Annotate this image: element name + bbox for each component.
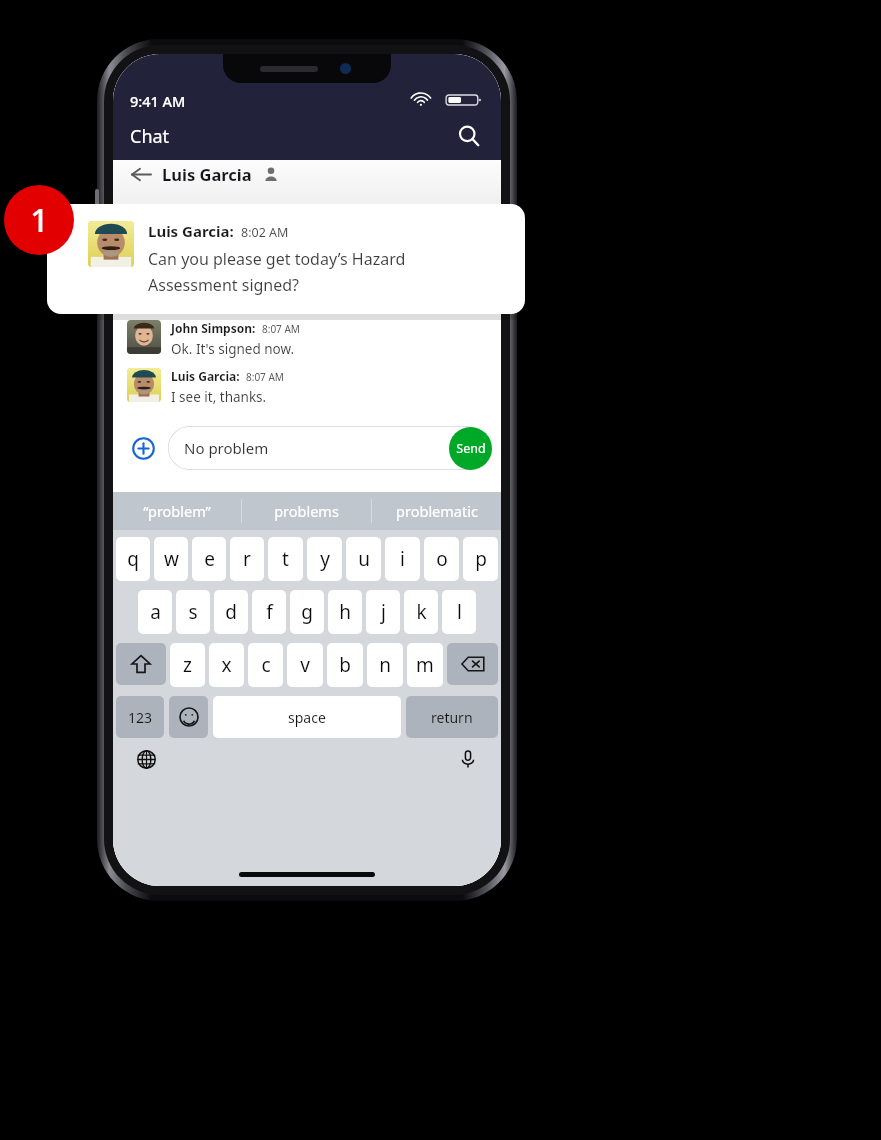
- button[interactable]: r: [230, 537, 264, 581]
- staticText: l: [457, 599, 462, 625]
- staticText: 123: [128, 708, 153, 727]
- button[interactable]: 123: [116, 696, 164, 738]
- staticText: h: [339, 599, 351, 625]
- staticText: j: [381, 599, 386, 625]
- staticText: 1: [30, 198, 49, 242]
- button[interactable]: m: [407, 643, 443, 687]
- button[interactable]: f: [252, 590, 286, 634]
- staticText: g: [301, 599, 313, 625]
- button[interactable]: v: [287, 643, 323, 687]
- staticText: 8:07 AM: [246, 370, 284, 384]
- button[interactable]: Back: [127, 160, 155, 188]
- staticText: Luis Garcia:: [171, 368, 240, 384]
- button[interactable]: Contact info: [261, 164, 281, 184]
- staticText: John Simpson:: [171, 320, 256, 336]
- button[interactable]: Change keyboard: [131, 744, 161, 774]
- staticText: c: [261, 652, 271, 678]
- staticText: v: [300, 652, 310, 678]
- staticText: f: [266, 599, 273, 625]
- button[interactable]: d: [214, 590, 248, 634]
- staticText: y: [320, 546, 330, 572]
- button[interactable]: Key: [169, 696, 208, 738]
- button[interactable]: Luis Garcia:: [47, 204, 525, 314]
- staticText: e: [204, 546, 215, 572]
- staticText: m: [416, 652, 434, 678]
- button[interactable]: x: [209, 643, 244, 687]
- staticText: problematic: [396, 501, 478, 521]
- button[interactable]: e: [192, 537, 226, 581]
- staticText: d: [225, 599, 237, 625]
- button[interactable]: j: [366, 590, 400, 634]
- staticText: I see it, thanks.: [171, 388, 267, 406]
- staticText: “problem”: [143, 501, 211, 521]
- button[interactable]: h: [328, 590, 362, 634]
- staticText: z: [183, 652, 192, 678]
- staticText: Ok. It's signed now.: [171, 340, 295, 358]
- staticText: Luis Garcia:: [148, 221, 234, 241]
- button[interactable]: s: [176, 590, 210, 634]
- staticText: o: [436, 546, 448, 572]
- button[interactable]: Key: [116, 643, 166, 685]
- button[interactable]: y: [307, 537, 342, 581]
- button[interactable]: No problem: [168, 426, 488, 470]
- staticText: problems: [274, 501, 339, 521]
- button[interactable]: Dictate: [453, 744, 483, 774]
- staticText: Luis Garcia: [162, 163, 252, 185]
- button[interactable]: space: [213, 696, 401, 738]
- button[interactable]: o: [424, 537, 459, 581]
- button[interactable]: w: [154, 537, 188, 581]
- staticText: return: [431, 708, 473, 727]
- staticText: w: [164, 546, 179, 572]
- button[interactable]: n: [367, 643, 403, 687]
- button[interactable]: return: [406, 696, 498, 738]
- staticText: 8:07 AM: [262, 322, 300, 336]
- button[interactable]: z: [170, 643, 205, 687]
- button[interactable]: g: [290, 590, 324, 634]
- staticText: r: [243, 546, 251, 572]
- button[interactable]: Search: [451, 118, 487, 154]
- button[interactable]: problematic: [372, 492, 501, 530]
- button[interactable]: Send: [449, 427, 492, 470]
- staticText: u: [358, 546, 370, 572]
- button[interactable]: l: [442, 590, 476, 634]
- button[interactable]: i: [385, 537, 420, 581]
- button[interactable]: Add attachment: [126, 431, 160, 465]
- staticText: space: [288, 708, 326, 727]
- staticText: a: [150, 599, 161, 625]
- button[interactable]: k: [404, 590, 438, 634]
- staticText: Assessment signed?: [148, 274, 300, 296]
- button[interactable]: p: [463, 537, 498, 581]
- staticText: q: [127, 546, 139, 572]
- staticText: p: [475, 546, 487, 572]
- staticText: i: [400, 546, 405, 572]
- staticText: 8:02 AM: [241, 224, 289, 241]
- button[interactable]: a: [138, 590, 172, 634]
- staticText: Chat: [130, 124, 170, 149]
- staticText: x: [221, 652, 232, 678]
- staticText: 9:41 AM: [130, 91, 186, 111]
- button[interactable]: b: [327, 643, 363, 687]
- button[interactable]: problems: [242, 492, 371, 530]
- button[interactable]: “problem”: [113, 492, 241, 530]
- staticText: Send: [456, 440, 486, 457]
- staticText: s: [188, 599, 198, 625]
- staticText: k: [416, 599, 427, 625]
- button[interactable]: Key: [447, 643, 498, 685]
- button[interactable]: q: [116, 537, 150, 581]
- staticText: n: [379, 652, 391, 678]
- staticText: b: [339, 652, 351, 678]
- button[interactable]: t: [268, 537, 303, 581]
- staticText: t: [282, 546, 289, 572]
- button[interactable]: u: [346, 537, 381, 581]
- button[interactable]: c: [248, 643, 283, 687]
- button[interactable]: 1: [4, 185, 74, 255]
- staticText: No problem: [184, 438, 269, 458]
- staticText: Can you please get today’s Hazard: [148, 248, 406, 270]
